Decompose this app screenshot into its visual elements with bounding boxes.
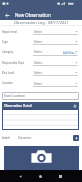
button[interactable]: Select	[33, 49, 78, 54]
staticText: Category	[2, 50, 14, 54]
button[interactable]: Back	[16, 172, 25, 181]
button[interactable]: Back	[0, 9, 15, 20]
button[interactable]: Select	[33, 60, 78, 65]
button[interactable]	[2, 109, 79, 130]
button[interactable]: Upload attachment	[73, 135, 79, 141]
staticText: Report level	[2, 30, 17, 34]
button[interactable]: Exact Location	[2, 92, 79, 100]
staticText: Document	[18, 136, 32, 140]
staticText: Select	[34, 50, 43, 54]
button[interactable]: Recent apps	[56, 172, 65, 181]
button[interactable]: Select	[33, 39, 78, 44]
staticText: Risk Level	[2, 71, 15, 75]
staticText: Select	[34, 30, 43, 34]
staticText: Responsible Dept	[2, 61, 25, 65]
staticText: Select	[34, 40, 43, 44]
button[interactable]: Observation Log - 08/17/2021	[0, 20, 82, 25]
staticText: Type	[2, 40, 8, 44]
button[interactable]: Voice input	[72, 103, 78, 109]
staticText: New Observation	[15, 12, 51, 18]
button[interactable]: Select	[33, 29, 78, 34]
staticText: Observation Detail	[4, 104, 32, 108]
staticText: Attach	[2, 136, 11, 140]
button[interactable]: Observation Detail	[2, 102, 79, 109]
staticText: Exact Location	[4, 94, 25, 98]
button[interactable]: Add New +	[63, 51, 77, 55]
staticText: Select	[34, 71, 43, 75]
staticText: Select	[34, 82, 43, 86]
staticText: Select	[34, 61, 43, 65]
staticText: Observation Log - 08/17/2021	[14, 20, 69, 25]
button[interactable]: Take photo	[4, 146, 79, 170]
button[interactable]: Home	[36, 172, 45, 181]
button[interactable]: Select	[33, 81, 78, 86]
staticText: Location	[2, 81, 13, 85]
staticText: Add New +	[63, 51, 77, 55]
button[interactable]: Select	[33, 70, 78, 75]
